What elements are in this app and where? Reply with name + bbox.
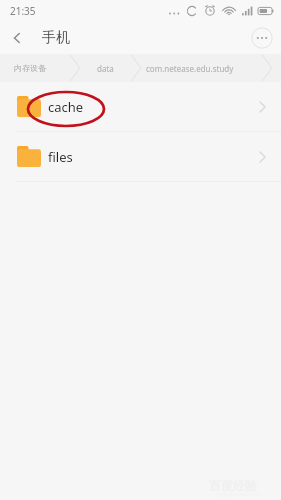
button[interactable]: More options [251, 27, 273, 49]
staticText: files [48, 148, 73, 166]
staticText: 21:35 [10, 4, 36, 18]
button[interactable]: files [0, 132, 281, 182]
staticText: cache [48, 98, 84, 116]
button[interactable]: data [97, 63, 114, 74]
button[interactable]: Back [0, 22, 34, 54]
button[interactable]: cache [0, 82, 281, 132]
button[interactable]: com.netease.edu.study [146, 63, 234, 74]
staticText: 手机 [42, 29, 70, 47]
button[interactable]: 内存设备 [14, 63, 46, 73]
